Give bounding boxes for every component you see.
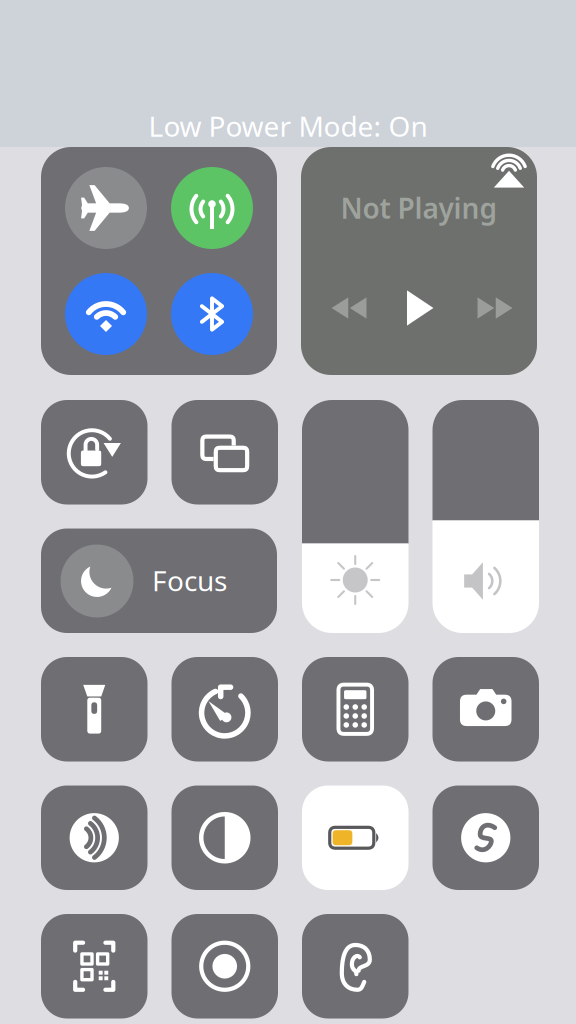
button[interactable]: Shazam	[432, 785, 539, 890]
button[interactable]: Brightness	[302, 400, 408, 633]
button[interactable]: Calculator	[302, 657, 408, 761]
button[interactable]: Apple Pay	[41, 785, 147, 890]
button[interactable]: Code Scanner	[41, 914, 147, 1018]
button[interactable]: Previous	[320, 279, 378, 337]
button[interactable]: Wi-Fi	[65, 273, 147, 355]
button[interactable]: Hearing	[302, 914, 408, 1018]
staticText: Not Playing	[340, 189, 497, 227]
button[interactable]: Timer	[171, 657, 278, 761]
button[interactable]: Camera	[432, 657, 539, 761]
button[interactable]: Next	[466, 279, 524, 337]
button[interactable]: Screen Mirroring	[171, 400, 278, 504]
button[interactable]: Dark Mode	[171, 785, 278, 890]
button[interactable]: Airplane Mode	[65, 167, 147, 249]
button[interactable]: Flashlight	[41, 657, 147, 761]
button[interactable]: Cellular Data	[171, 167, 253, 249]
button[interactable]: Low Power Mode	[302, 785, 408, 890]
button[interactable]: Screen Recording	[171, 914, 278, 1018]
staticText: Low Power Mode: On	[148, 107, 427, 145]
button[interactable]: Rotation Lock	[41, 400, 147, 504]
staticText: Focus	[152, 562, 227, 599]
button[interactable]: Bluetooth	[171, 273, 253, 355]
button[interactable]: Focus	[41, 528, 277, 633]
button[interactable]: Volume	[432, 400, 539, 633]
button[interactable]: Play	[390, 279, 448, 337]
button[interactable]: AirPlay	[482, 143, 536, 197]
